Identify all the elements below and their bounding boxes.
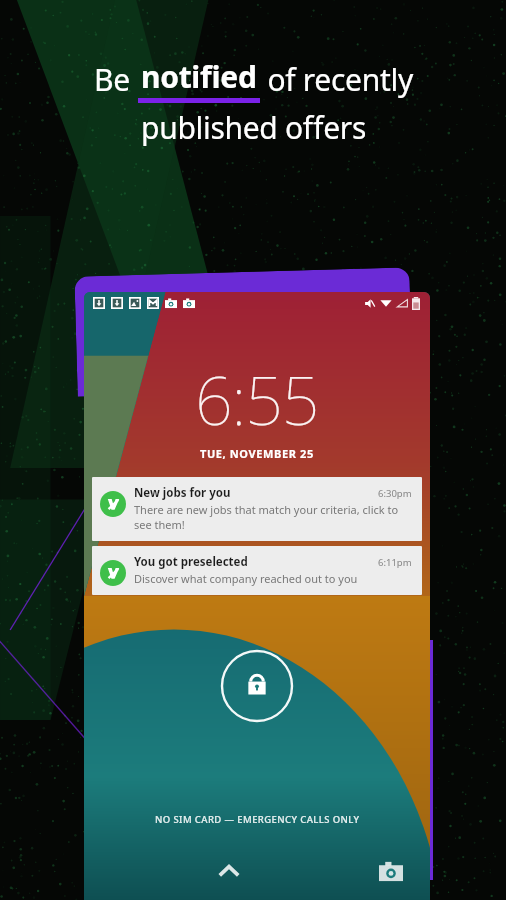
button[interactable]: New jobs for you	[92, 477, 422, 541]
button[interactable]: Unlock	[212, 854, 246, 888]
staticText: There are new jobs that match your crite…	[134, 502, 399, 532]
staticText: You got preselected	[134, 554, 378, 570]
staticText: TUE, NOVEMBER 25	[200, 446, 314, 461]
staticText: notified	[141, 56, 257, 97]
staticText: Discover what company reached out to you	[134, 571, 358, 586]
staticText: of recently	[260, 59, 413, 100]
staticText: 6:55	[195, 354, 319, 444]
staticText: New jobs for you	[134, 485, 378, 501]
staticText: published offers	[141, 107, 366, 148]
staticText: 6:11pm	[378, 556, 412, 569]
staticText: NO SIM CARD — EMERGENCY CALLS ONLY	[155, 813, 360, 826]
staticText: Be	[94, 59, 138, 100]
button[interactable]: You got preselected	[92, 546, 422, 595]
staticText: 6:30pm	[378, 487, 412, 500]
button[interactable]: Unlock phone	[220, 649, 294, 723]
button[interactable]: Camera	[374, 854, 408, 888]
